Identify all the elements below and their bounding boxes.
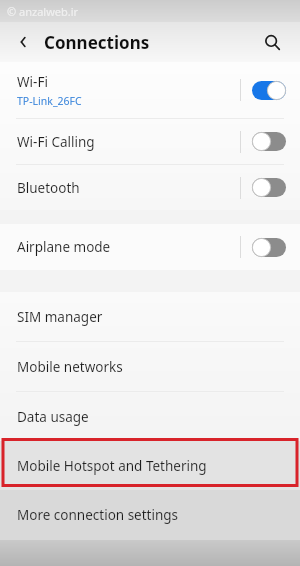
staticText: Mobile networks [17, 358, 123, 376]
button[interactable]: Wi-Fi switch [252, 81, 286, 100]
staticText: Mobile Hotspot and Tethering [17, 457, 207, 475]
staticText: More connection settings [17, 506, 179, 524]
staticText: Airplane mode [17, 238, 111, 256]
button[interactable]: More connection settings [0, 490, 300, 540]
staticText: Connections [44, 31, 150, 54]
button[interactable]: Mobile networks [0, 342, 300, 391]
button[interactable]: Back [9, 28, 37, 56]
staticText: Wi-Fi [17, 73, 48, 91]
button[interactable]: Bluetooth [0, 165, 300, 210]
button[interactable]: Bluetooth switch [252, 178, 286, 197]
staticText: Bluetooth [17, 179, 80, 197]
button[interactable]: Data usage [0, 392, 300, 441]
button[interactable]: Wi-Fi Calling [0, 119, 300, 164]
staticText: SIM manager [17, 308, 103, 326]
button[interactable]: Search [258, 28, 286, 56]
button[interactable]: Airplane mode switch [252, 238, 286, 257]
button[interactable]: Wi-Fi Calling switch [252, 132, 286, 151]
button[interactable]: Airplane mode [0, 224, 300, 270]
staticText: Data usage [17, 408, 89, 426]
button[interactable]: SIM manager [0, 292, 300, 341]
staticText: Wi-Fi Calling [17, 133, 95, 151]
staticText: TP-Link_26FC [17, 94, 82, 108]
staticText: © anzalweb.ir [7, 4, 79, 19]
button[interactable]: Mobile Hotspot and Tethering [0, 441, 300, 490]
button[interactable]: Wi-Fi [0, 62, 300, 118]
